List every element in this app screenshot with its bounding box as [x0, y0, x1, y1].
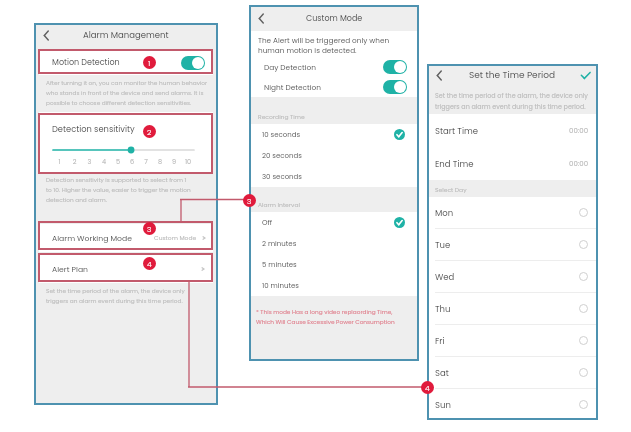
button[interactable]: Night Detection: [249, 77, 419, 97]
staticText: Sat: [435, 367, 449, 379]
button[interactable]: 10 minutes: [249, 275, 419, 296]
staticText: Start Time: [435, 125, 479, 137]
staticText: 1: [52, 157, 67, 166]
button[interactable]: Wed: [427, 261, 598, 292]
staticText: Custom Mode: [154, 234, 197, 242]
staticText: Recording Time: [258, 113, 305, 121]
staticText: 2: [67, 157, 82, 166]
staticText: 00:00: [569, 126, 589, 136]
button[interactable]: Motion Detection: [39, 50, 213, 75]
button[interactable]: Thu: [427, 293, 598, 324]
button[interactable]: 30 seconds: [249, 166, 419, 187]
staticText: 5: [111, 157, 125, 166]
staticText: Detection sensitivity is supported to se…: [46, 176, 191, 204]
button[interactable]: Back: [41, 30, 52, 41]
staticText: 10: [181, 157, 195, 166]
button[interactable]: Toggle: [383, 60, 407, 74]
staticText: Alarm Management: [83, 29, 169, 41]
staticText: Thu: [435, 303, 451, 315]
staticText: Custom Mode: [306, 13, 363, 24]
staticText: Day Detection: [264, 62, 316, 72]
staticText: Sun: [435, 399, 451, 411]
staticText: Night Detection: [264, 82, 321, 92]
button[interactable]: Off: [249, 212, 419, 233]
button[interactable]: Back: [434, 70, 445, 81]
button[interactable]: 10 seconds: [249, 124, 419, 145]
staticText: 7: [139, 157, 153, 166]
staticText: The Alert will be triggered only when hu…: [258, 35, 390, 55]
staticText: 3: [247, 196, 252, 206]
button[interactable]: Sun: [427, 389, 598, 420]
button[interactable]: Start Time: [427, 114, 598, 147]
staticText: 5 minutes: [262, 260, 297, 270]
staticText: Alarm Interval: [258, 201, 300, 209]
button[interactable]: Alert Plan: [39, 255, 213, 283]
staticText: Tue: [435, 239, 451, 251]
staticText: 3: [82, 157, 97, 166]
button[interactable]: Confirm: [580, 70, 591, 81]
staticText: 2 minutes: [262, 239, 297, 249]
staticText: Select Day: [435, 186, 467, 194]
button[interactable]: Day Detection: [249, 56, 419, 77]
button[interactable]: End Time: [427, 147, 598, 180]
staticText: 1: [148, 58, 151, 68]
staticText: Fri: [435, 335, 445, 347]
staticText: Wed: [435, 271, 455, 283]
staticText: * This mode Has a long video replaording…: [256, 308, 395, 326]
staticText: 4: [97, 157, 111, 166]
staticText: After turning it on, you can monitor the…: [46, 79, 208, 107]
staticText: 8: [153, 157, 167, 166]
staticText: 00:00: [569, 159, 589, 169]
button[interactable]: Back: [256, 13, 267, 24]
staticText: Mon: [435, 207, 454, 219]
staticText: 9: [167, 157, 181, 166]
button[interactable]: Mon: [427, 197, 598, 228]
staticText: Motion Detection: [52, 57, 120, 68]
button[interactable]: 5 minutes: [249, 254, 419, 275]
staticText: 2: [147, 127, 152, 137]
staticText: 30 seconds: [262, 172, 302, 182]
staticText: 20 seconds: [262, 151, 302, 161]
staticText: 10 seconds: [262, 130, 301, 140]
button[interactable]: Tue: [427, 229, 598, 260]
staticText: 4: [425, 383, 430, 393]
staticText: Detection sensitivity: [52, 123, 135, 135]
staticText: End Time: [435, 158, 474, 170]
staticText: Off: [262, 218, 273, 228]
staticText: Alarm Working Mode: [52, 233, 132, 244]
staticText: Set the Time Period: [469, 69, 556, 82]
button[interactable]: 2 minutes: [249, 233, 419, 254]
staticText: 4: [147, 259, 152, 269]
button[interactable]: Fri: [427, 325, 598, 356]
button[interactable]: Toggle: [181, 56, 205, 70]
staticText: Alert Plan: [52, 264, 89, 275]
button[interactable]: 20 seconds: [249, 145, 419, 166]
staticText: Set the time period of the alarm, the de…: [435, 91, 588, 111]
button[interactable]: Alarm Working Mode: [39, 224, 213, 252]
staticText: 6: [125, 157, 139, 166]
staticText: Set the time period of the alarm, the de…: [46, 287, 185, 305]
button[interactable]: Toggle: [383, 80, 407, 94]
staticText: 10 minutes: [262, 281, 299, 291]
staticText: 3: [147, 224, 152, 234]
button[interactable]: Sat: [427, 357, 598, 388]
